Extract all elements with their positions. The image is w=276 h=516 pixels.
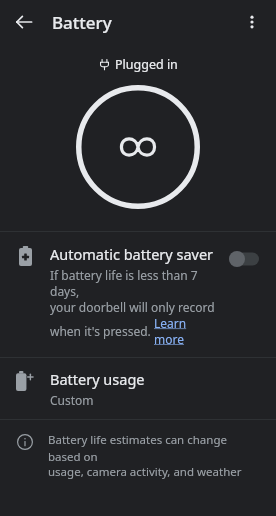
staticText: usage, camera activity, and weather bbox=[48, 464, 242, 480]
button[interactable]: Battery usage bbox=[0, 358, 276, 419]
staticText: If battery life is less than 7 days, bbox=[50, 267, 216, 299]
staticText: Battery usage bbox=[50, 369, 145, 389]
staticText: Automatic battery saver bbox=[50, 244, 214, 264]
staticText: Learn more bbox=[154, 315, 216, 347]
button[interactable]: Automatic battery saver toggle bbox=[224, 246, 264, 272]
staticText: Battery bbox=[52, 11, 112, 34]
staticText: Plugged in bbox=[115, 56, 178, 73]
button[interactable]: Back bbox=[6, 4, 42, 40]
button[interactable]: Learn more bbox=[154, 315, 216, 347]
staticText: your doorbell will only record bbox=[50, 299, 215, 315]
staticText: when it's pressed. bbox=[50, 323, 154, 339]
staticText: Battery life estimates can change based … bbox=[48, 432, 262, 464]
button[interactable]: Automatic battery saver bbox=[0, 232, 276, 357]
button[interactable]: More options bbox=[234, 4, 270, 40]
staticText: Custom bbox=[50, 392, 94, 408]
